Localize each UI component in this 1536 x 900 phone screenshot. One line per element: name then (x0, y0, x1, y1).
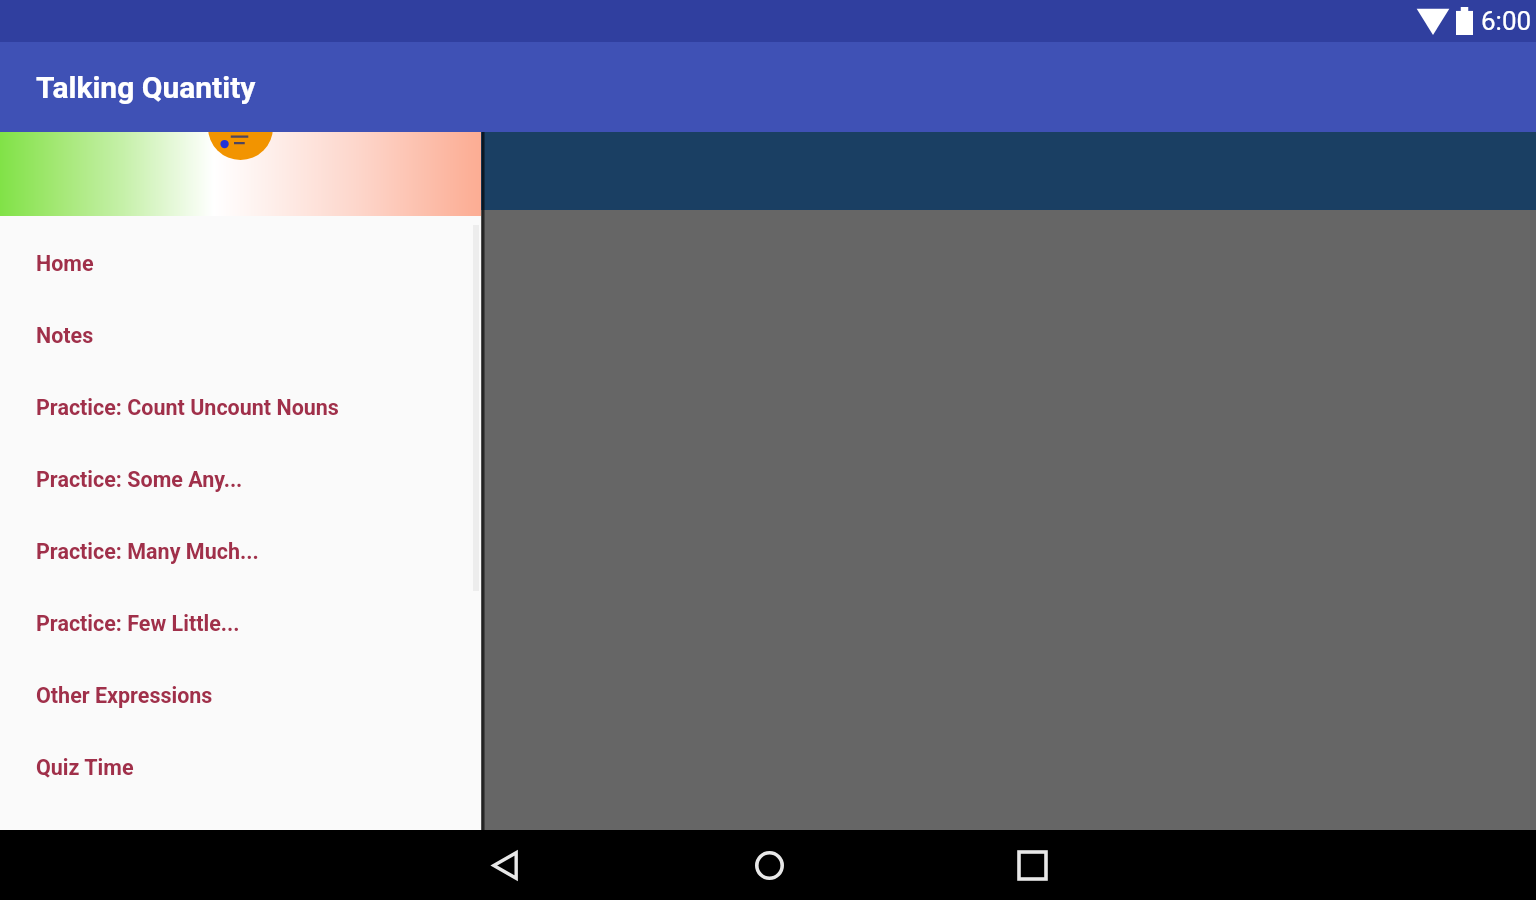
button[interactable]: Practice: Count Uncount Nouns (0, 371, 481, 443)
staticText: Practice: Few Little... (36, 611, 240, 636)
button[interactable]: Back (470, 830, 540, 900)
staticText: Practice: Count Uncount Nouns (36, 395, 339, 420)
button[interactable]: Home (734, 830, 804, 900)
button[interactable]: Recent apps (997, 830, 1067, 900)
staticText: Talking Quantity (36, 70, 256, 105)
staticText: Home (36, 251, 94, 276)
button[interactable]: Talking Quantity profile header (0, 132, 481, 216)
staticText: Other Expressions (36, 683, 213, 708)
staticText: Practice: Some Any... (36, 467, 243, 492)
staticText: 6:00 (1481, 6, 1532, 36)
button[interactable]: Home (0, 227, 481, 299)
button[interactable]: Practice: Some Any... (0, 443, 481, 515)
staticText: Quiz Time (36, 755, 134, 780)
button[interactable]: Practice: Many Much... (0, 515, 481, 587)
staticText: 6:00 (1481, 6, 1532, 36)
staticText: Practice: Many Much... (36, 539, 259, 564)
button[interactable]: Notes (0, 299, 481, 371)
button[interactable]: Practice: Few Little... (0, 587, 481, 659)
staticText: Talking Quantity (36, 70, 256, 105)
staticText: Notes (36, 323, 94, 348)
button[interactable]: Quiz Time (0, 731, 481, 803)
button[interactable]: Other Expressions (0, 659, 481, 731)
